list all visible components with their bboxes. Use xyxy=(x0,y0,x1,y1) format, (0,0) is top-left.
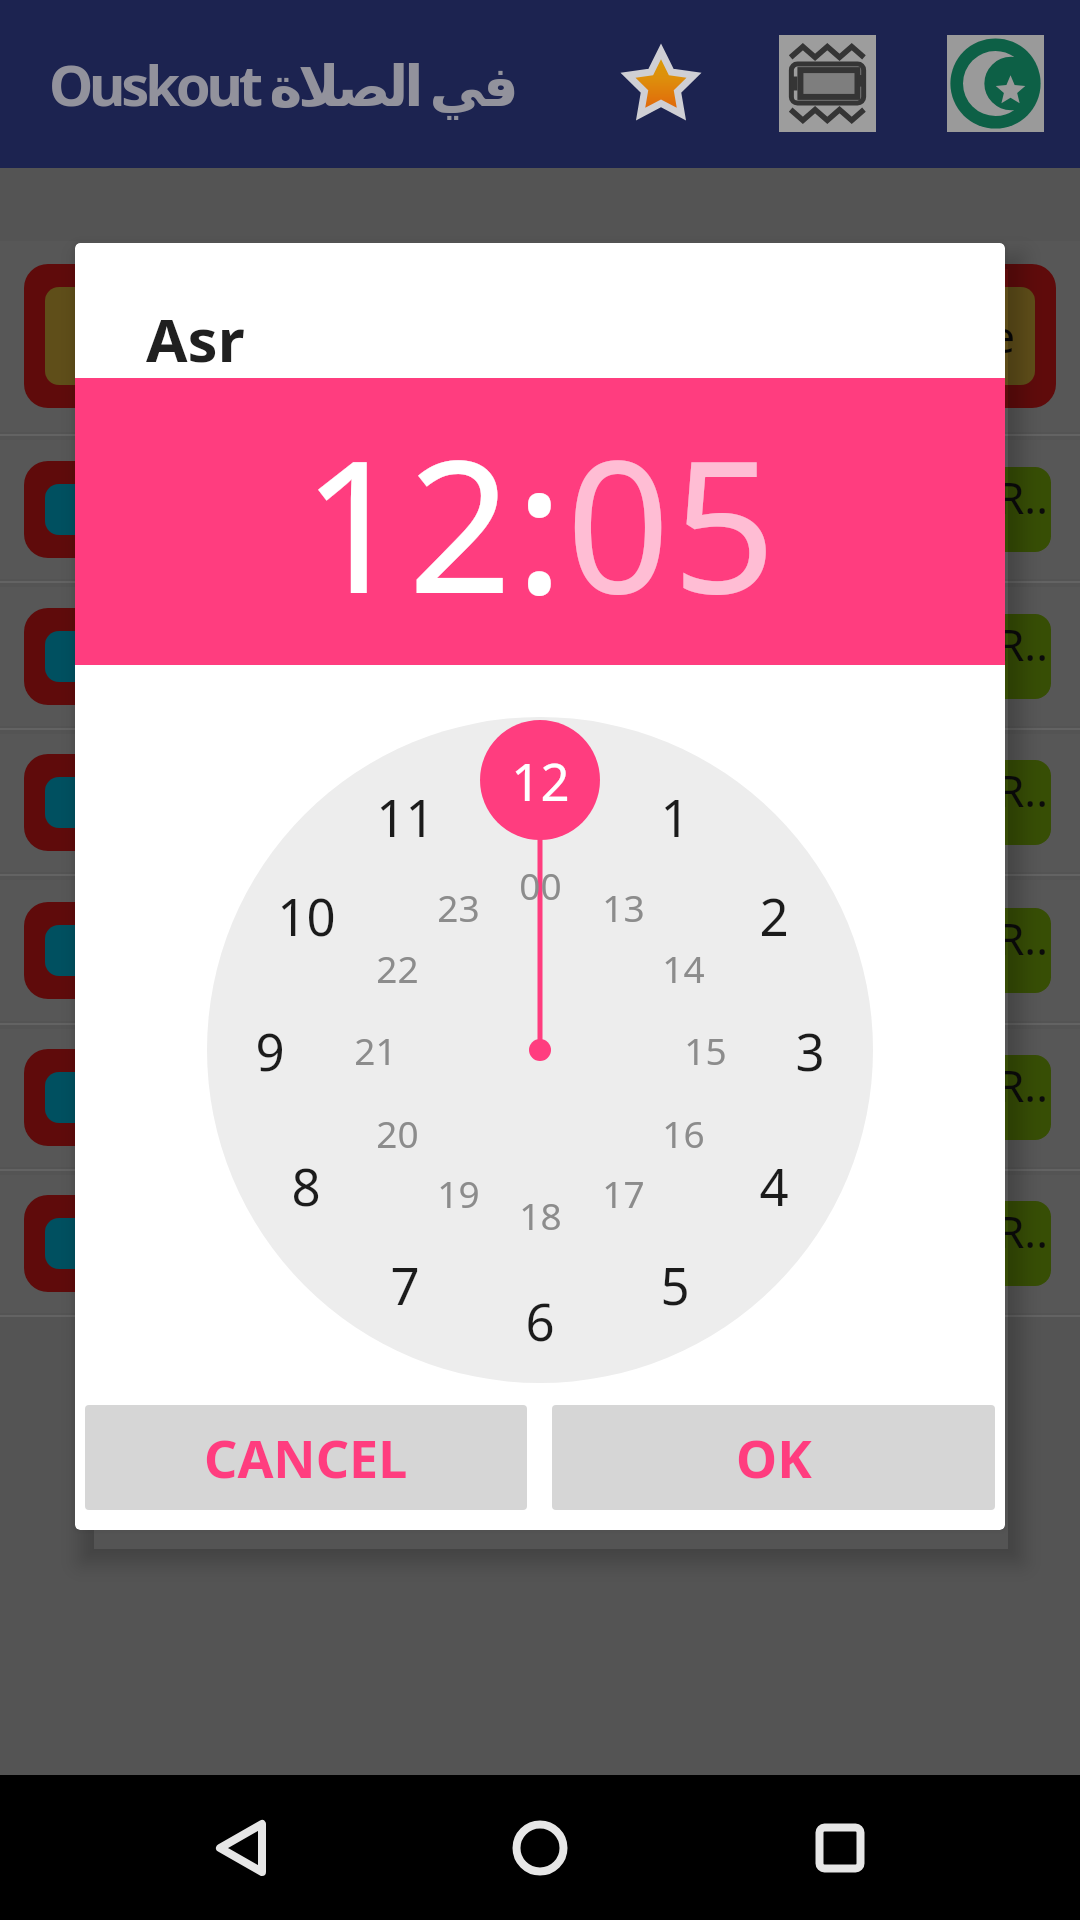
staticText: 6 xyxy=(525,1286,555,1355)
button[interactable]: Prayer icon xyxy=(922,264,1056,408)
button[interactable] xyxy=(0,730,1080,876)
staticText: 22 xyxy=(376,943,419,993)
button[interactable]: R... xyxy=(945,467,1051,552)
button[interactable] xyxy=(0,1171,1080,1317)
button[interactable]: 3 xyxy=(760,1010,860,1090)
staticText: 7 xyxy=(390,1250,420,1319)
button[interactable]: 22 xyxy=(347,935,447,1001)
button[interactable]: 20 xyxy=(347,1100,447,1166)
staticText: 19 xyxy=(437,1168,480,1218)
button[interactable]: Prayer settings xyxy=(937,25,1053,141)
button[interactable]: Prayer icon xyxy=(24,754,158,851)
staticText: R... xyxy=(997,614,1051,699)
button[interactable]: Prayer icon xyxy=(24,608,158,705)
staticText: CANCEL xyxy=(204,1422,408,1493)
button[interactable]: Favorite xyxy=(603,25,719,141)
staticText: 1 xyxy=(660,782,690,851)
button[interactable]: 12 xyxy=(490,740,590,820)
staticText: 21 xyxy=(354,1025,397,1075)
button[interactable]: 21 xyxy=(325,1017,425,1083)
button[interactable]: 1 xyxy=(625,776,725,856)
staticText: OK xyxy=(736,1422,812,1493)
staticText: 00 xyxy=(519,860,562,910)
button[interactable]: R... xyxy=(945,760,1051,845)
staticText: 9 xyxy=(255,1016,285,1085)
button[interactable]: R... xyxy=(945,614,1051,699)
staticText: D xyxy=(75,631,108,682)
button[interactable]: Home xyxy=(470,1775,610,1920)
button[interactable]: Prayer icon xyxy=(24,1195,158,1292)
staticText: 20 xyxy=(376,1108,419,1158)
staticText: 16 xyxy=(662,1108,705,1158)
staticText: R... xyxy=(997,1201,1051,1286)
button[interactable]: Vibrate mode xyxy=(769,25,885,141)
staticText: R... xyxy=(997,760,1051,845)
staticText: : xyxy=(515,398,566,646)
button[interactable]: OK xyxy=(552,1405,995,1510)
button[interactable] xyxy=(0,436,1080,583)
staticText: Ouskout في الصلاة xyxy=(49,46,515,122)
button[interactable] xyxy=(0,583,1080,730)
button[interactable]: Prayer icon xyxy=(24,264,158,408)
button[interactable]: Prayer icon xyxy=(24,461,158,558)
staticText: 8 xyxy=(291,1151,321,1220)
button[interactable] xyxy=(0,876,1080,1025)
staticText: N xyxy=(74,306,108,366)
staticText: 11 xyxy=(376,782,435,851)
button[interactable]: 18 xyxy=(490,1182,590,1248)
button[interactable]: 9 xyxy=(220,1010,320,1090)
button[interactable] xyxy=(0,237,1080,436)
button[interactable]: Recent apps xyxy=(770,1775,910,1920)
button[interactable]: 11 xyxy=(355,776,455,856)
staticText: 3 xyxy=(795,1016,825,1085)
button[interactable]: 13 xyxy=(573,874,673,940)
button[interactable]: 2 xyxy=(724,875,824,955)
button[interactable]: 6 xyxy=(490,1280,590,1360)
button[interactable]: 14 xyxy=(633,935,733,1001)
staticText: ne xyxy=(963,306,1016,366)
staticText: 18 xyxy=(519,1190,562,1240)
staticText: 23 xyxy=(437,882,480,932)
staticText: R... xyxy=(997,908,1051,993)
button[interactable]: CANCEL xyxy=(85,1405,527,1510)
staticText: 2 xyxy=(759,881,789,950)
staticText: 14 xyxy=(662,943,705,993)
button[interactable]: 16 xyxy=(633,1100,733,1166)
staticText: 5 xyxy=(660,1250,690,1319)
staticText: 13 xyxy=(602,882,645,932)
button[interactable]: 10 xyxy=(256,875,356,955)
button[interactable]: Asr xyxy=(75,292,1005,385)
button[interactable]: 7 xyxy=(355,1244,455,1324)
button[interactable]: R... xyxy=(945,1055,1051,1140)
button[interactable]: Prayer icon xyxy=(24,902,158,999)
staticText: 17 xyxy=(602,1168,645,1218)
button[interactable]: R... xyxy=(945,908,1051,993)
button[interactable]: 17 xyxy=(573,1160,673,1226)
button[interactable]: 19 xyxy=(408,1160,508,1226)
button[interactable]: 23 xyxy=(408,874,508,940)
button[interactable]: 8 xyxy=(256,1145,356,1225)
staticText: R... xyxy=(997,1055,1051,1140)
staticText: 4 xyxy=(759,1151,789,1220)
button[interactable]: 05 xyxy=(566,398,779,646)
button[interactable]: 15 xyxy=(655,1017,755,1083)
staticText: 12 xyxy=(511,746,570,815)
staticText: R... xyxy=(997,467,1051,552)
staticText: Asr xyxy=(146,298,245,380)
staticText: 15 xyxy=(684,1025,727,1075)
button[interactable]: 12 xyxy=(302,398,515,646)
button[interactable]: Back xyxy=(171,1775,311,1920)
button[interactable]: 4 xyxy=(724,1145,824,1225)
button[interactable]: Prayer icon xyxy=(24,1049,158,1146)
staticText: 10 xyxy=(277,881,336,950)
button[interactable] xyxy=(0,1025,1080,1171)
button[interactable]: 5 xyxy=(625,1244,725,1324)
button[interactable]: R... xyxy=(945,1201,1051,1286)
button[interactable]: 00 xyxy=(490,852,590,918)
